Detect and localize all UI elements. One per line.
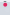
button[interactable]: Profile photo bbox=[3, 3, 7, 7]
